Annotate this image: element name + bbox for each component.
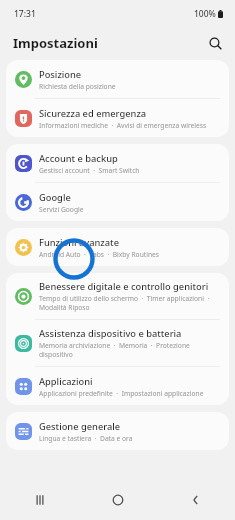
staticText: 100%: [194, 8, 216, 20]
button[interactable]: Posizione: [6, 60, 229, 98]
staticText: Google: [39, 191, 71, 204]
staticText: Memoria archiviazione · Memoria · Protez…: [39, 341, 221, 359]
button[interactable]: Account e backup: [6, 144, 229, 182]
staticText: Informazioni mediche · Avvisi di emergen…: [39, 121, 207, 130]
button[interactable]: App recenti: [0, 480, 79, 520]
staticText: Impostazioni: [13, 34, 98, 52]
button[interactable]: Applicazioni: [6, 367, 229, 405]
button[interactable]: Home: [79, 480, 157, 520]
staticText: Gestisci account · Smart Switch: [39, 166, 140, 175]
button[interactable]: Sicurezza ed emergenza: [6, 99, 229, 137]
button[interactable]: Gestione generale: [6, 412, 229, 450]
staticText: Assistenza dispositivo e batteria: [39, 327, 182, 340]
staticText: Applicazioni predefinite · Impostazioni …: [39, 389, 204, 398]
staticText: Richiesta della posizione: [39, 82, 116, 91]
staticText: Funzioni avanzate: [39, 236, 119, 249]
staticText: 17:31: [14, 8, 36, 20]
staticText: Sicurezza ed emergenza: [39, 107, 147, 120]
button[interactable]: Indietro: [157, 480, 235, 520]
staticText: Tempo di utilizzo dello schermo · Timer …: [39, 294, 221, 312]
staticText: Posizione: [39, 68, 82, 81]
staticText: Lingua e tastiera · Data e ora: [39, 434, 133, 443]
staticText: Servizi Google: [39, 205, 84, 214]
button[interactable]: Benessere digitale e controllo genitori: [6, 273, 229, 319]
button[interactable]: Cerca: [203, 31, 227, 55]
staticText: Android Auto · Labs · Bixby Routines: [39, 250, 160, 259]
staticText: Account e backup: [39, 152, 118, 165]
staticText: Gestione generale: [39, 420, 121, 433]
staticText: Applicazioni: [39, 375, 93, 388]
staticText: Benessere digitale e controllo genitori: [39, 280, 209, 293]
button[interactable]: Assistenza dispositivo e batteria: [6, 320, 229, 366]
button[interactable]: Funzioni avanzate: [6, 228, 229, 266]
button[interactable]: Google: [6, 183, 229, 221]
